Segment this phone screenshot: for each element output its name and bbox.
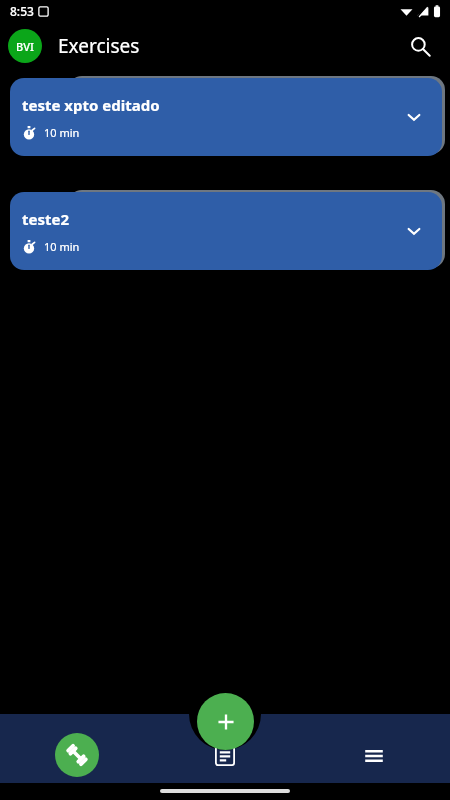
button[interactable]: Search xyxy=(400,26,440,66)
button[interactable]: Menu xyxy=(354,736,394,776)
button[interactable]: teste xpto editado xyxy=(10,78,442,156)
button[interactable]: Expand xyxy=(400,217,428,245)
staticText: teste2 xyxy=(22,209,70,229)
staticText: BVI xyxy=(16,39,34,54)
button[interactable]: Plans xyxy=(205,736,245,776)
staticText: teste xpto editado xyxy=(22,95,160,115)
staticText: Exercises xyxy=(58,33,140,59)
button[interactable]: Expand xyxy=(400,103,428,131)
button[interactable]: teste2 xyxy=(10,192,442,270)
staticText: 8:53 xyxy=(10,3,34,19)
staticText: 10 min xyxy=(44,239,80,254)
button[interactable]: Profile xyxy=(8,29,42,63)
button[interactable]: Exercises xyxy=(55,733,99,777)
staticText: 10 min xyxy=(44,125,80,140)
button[interactable]: Add exercise xyxy=(197,693,254,750)
